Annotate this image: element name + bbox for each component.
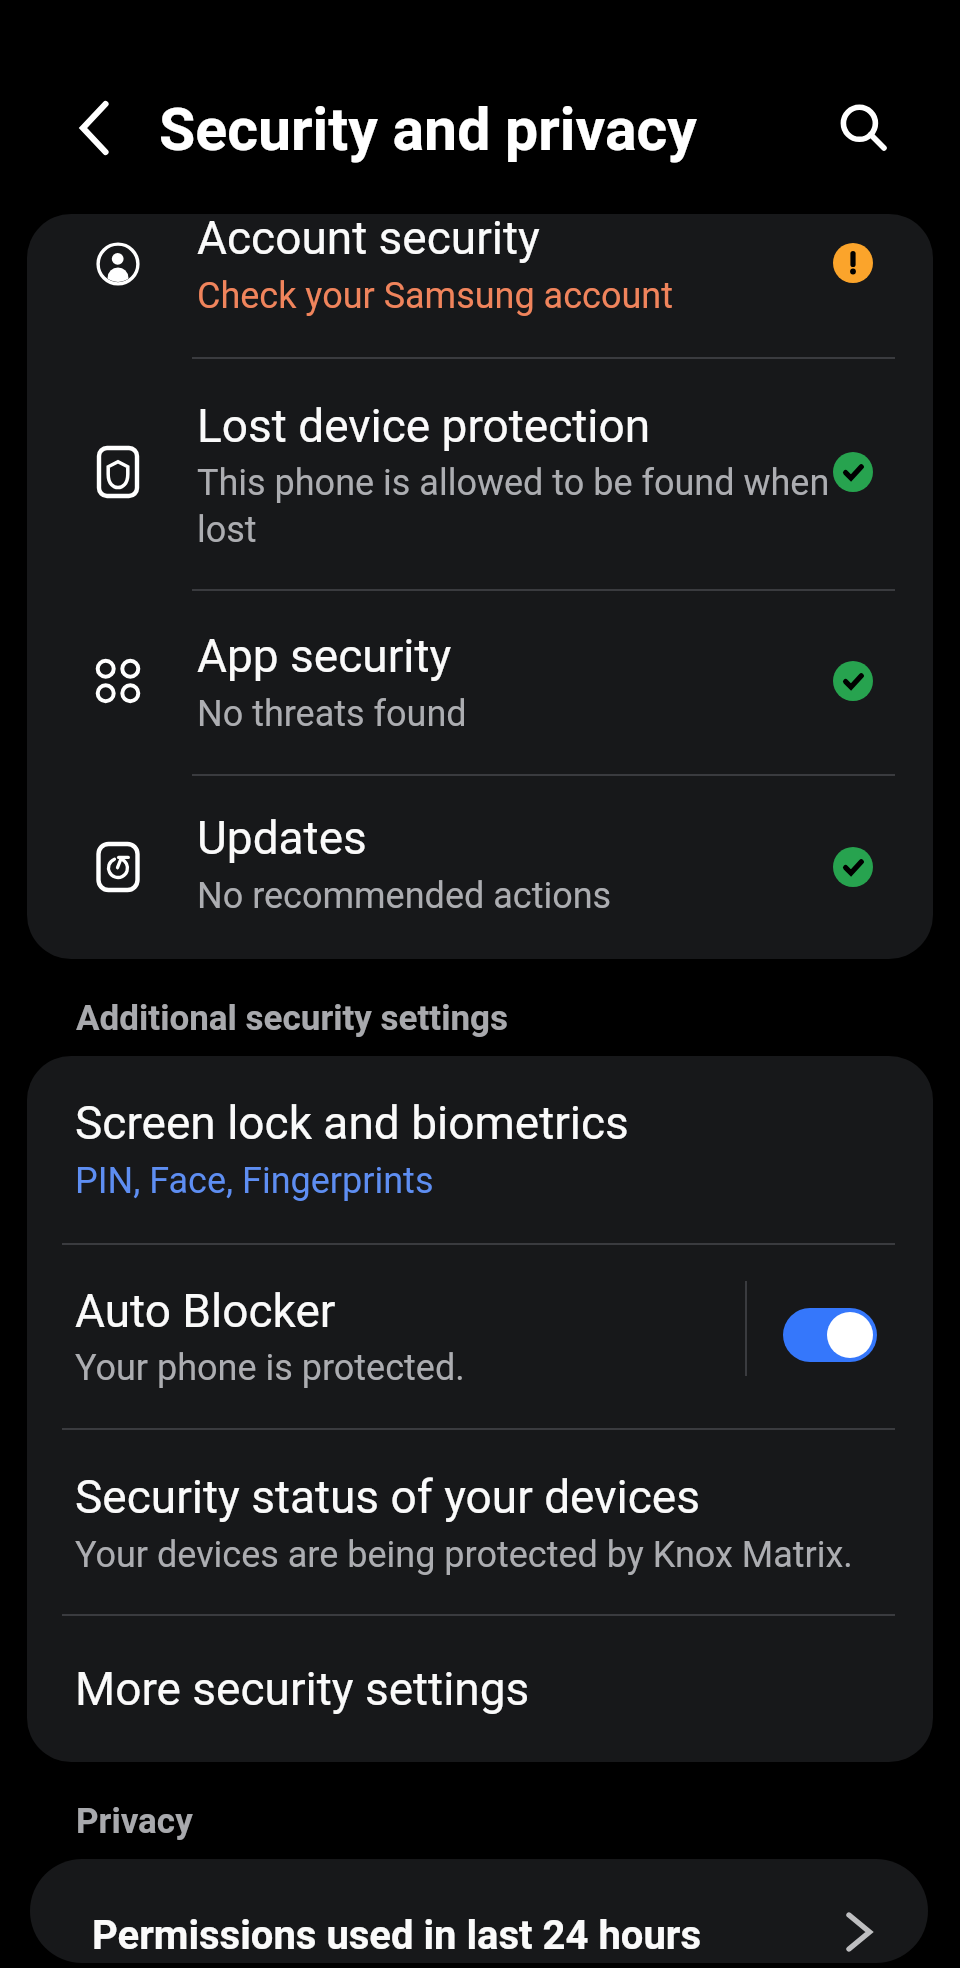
staticText: Permissions used in last 24 hours <box>92 1912 702 1959</box>
staticText: No recommended actions <box>197 871 612 918</box>
staticText: Your devices are being protected by Knox… <box>75 1530 853 1577</box>
staticText: lost <box>197 505 257 552</box>
staticText: App security <box>197 630 452 683</box>
staticText: This phone is allowed to be found when <box>197 458 830 505</box>
button[interactable] <box>27 357 933 589</box>
button[interactable]: Navigate up <box>53 88 133 168</box>
staticText: Updates <box>197 812 367 865</box>
staticText: Account security <box>197 212 540 265</box>
button[interactable] <box>27 1056 933 1243</box>
staticText: Additional security settings <box>76 998 509 1039</box>
staticText: Security status of your devices <box>75 1471 700 1524</box>
staticText: Check your Samsung account <box>197 271 673 318</box>
staticText: No threats found <box>197 689 467 736</box>
button[interactable] <box>27 1428 933 1614</box>
staticText: Lost device protection <box>197 400 651 453</box>
staticText: Your phone is protected. <box>75 1343 465 1390</box>
button[interactable] <box>27 214 933 357</box>
button[interactable]: Auto Blocker, on <box>760 1275 900 1395</box>
button[interactable] <box>27 589 933 774</box>
staticText: Screen lock and biometrics <box>75 1097 629 1150</box>
staticText: Privacy <box>76 1801 193 1842</box>
button[interactable] <box>27 1614 933 1762</box>
button[interactable] <box>27 774 933 959</box>
staticText: Security and privacy <box>159 95 698 164</box>
button[interactable] <box>27 1243 745 1428</box>
staticText: Auto Blocker <box>75 1285 336 1338</box>
staticText: More security settings <box>75 1663 530 1716</box>
staticText: PIN, Face, Fingerprints <box>75 1156 434 1203</box>
button[interactable]: Permissions used in last 24 hours <box>30 1859 928 1963</box>
button[interactable]: Search <box>820 84 900 164</box>
